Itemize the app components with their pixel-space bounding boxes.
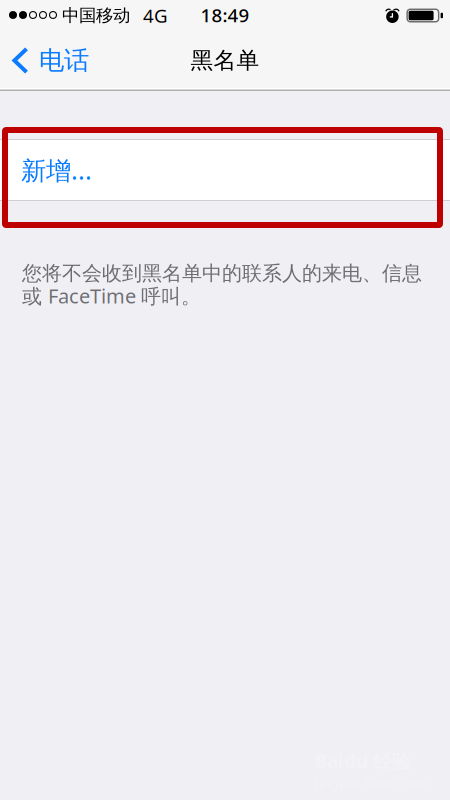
staticText: 中国移动 — [62, 5, 130, 26]
button[interactable]: 返回 电话 — [0, 36, 99, 91]
staticText: 新增... — [21, 153, 92, 187]
staticText: 电话 — [39, 45, 89, 76]
staticText: 或 FaceTime 呼叫。 — [22, 283, 201, 309]
staticText: 18:49 — [200, 3, 249, 27]
staticText: 4G — [143, 3, 168, 28]
staticText: 黑名单 — [190, 47, 259, 74]
button[interactable]: 新增... — [0, 140, 450, 200]
staticText: 您将不会收到黑名单中的联系人的来电、信息 — [22, 261, 422, 286]
